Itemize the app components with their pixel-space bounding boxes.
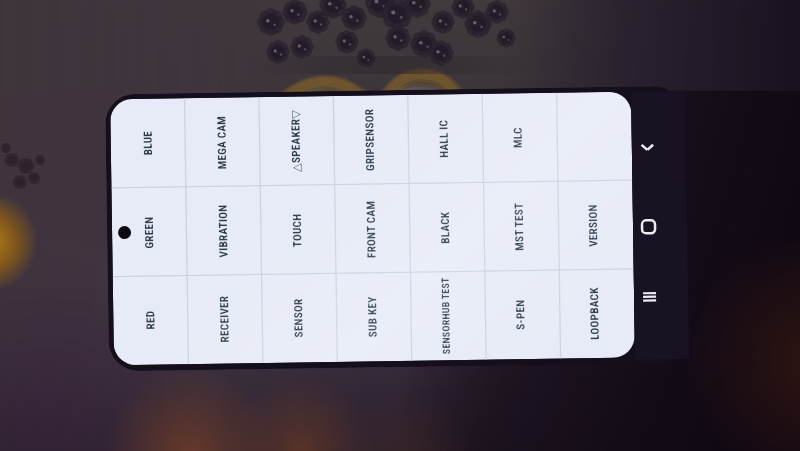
staticText: BLUE	[142, 131, 155, 156]
staticText: RECEIVER	[218, 295, 232, 343]
staticText: GRIPSENSOR	[363, 108, 377, 171]
staticText: S-PEN	[514, 299, 528, 330]
staticText: VERSION	[587, 204, 600, 247]
button[interactable]: RECEIVER	[187, 275, 262, 364]
button[interactable]: MEGA CAM	[184, 97, 259, 187]
staticText: SENSORHUB TEST	[440, 277, 453, 354]
button[interactable]: MST TEST	[481, 182, 557, 272]
staticText: MLC	[512, 127, 525, 148]
staticText: LOOPBACK	[588, 287, 602, 340]
staticText: FRONT CAM	[365, 200, 378, 258]
staticText: RED	[144, 311, 157, 330]
button[interactable]: Home	[633, 211, 663, 241]
button[interactable]: BLACK	[407, 183, 483, 273]
button[interactable]	[554, 92, 629, 182]
button[interactable]: GRIPSENSOR	[332, 95, 407, 185]
staticText: BLACK	[439, 211, 452, 244]
button[interactable]: Recent apps	[634, 281, 664, 311]
staticText: MEGA CAM	[215, 115, 229, 170]
button[interactable]: FRONT CAM	[333, 184, 409, 274]
staticText: TOUCH	[291, 213, 304, 248]
button[interactable]: SUB KEY	[335, 273, 410, 362]
staticText: GREEN	[143, 217, 156, 249]
staticText: △SPEAKER▽	[289, 109, 303, 173]
button[interactable]: MLC	[480, 93, 555, 183]
staticText: SENSOR	[292, 298, 306, 338]
staticText: MST TEST	[513, 202, 526, 251]
staticText: HALL IC	[437, 119, 451, 158]
staticText: VIBRATION	[217, 204, 230, 258]
button[interactable]: △SPEAKER▽	[258, 96, 333, 186]
button[interactable]: TOUCH	[259, 185, 335, 275]
button[interactable]: Back	[632, 131, 662, 161]
button[interactable]: S-PEN	[483, 271, 558, 360]
button[interactable]: LOOPBACK	[557, 270, 632, 359]
button[interactable]: VIBRATION	[185, 186, 261, 276]
staticText: SUB KEY	[366, 296, 380, 337]
button[interactable]: RED	[113, 276, 188, 365]
button[interactable]: BLUE	[110, 98, 185, 188]
button[interactable]: VERSION	[555, 181, 631, 271]
button[interactable]: HALL IC	[406, 94, 481, 184]
button[interactable]: GREEN	[111, 187, 187, 277]
button[interactable]: SENSORHUB TEST	[409, 272, 484, 361]
button[interactable]: SENSOR	[261, 274, 336, 363]
